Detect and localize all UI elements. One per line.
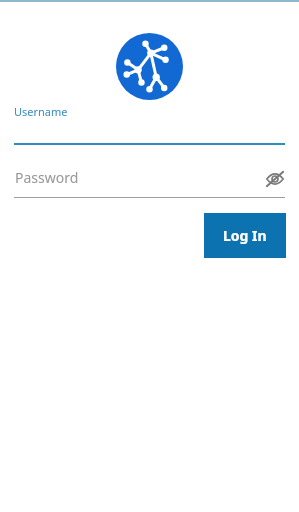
staticText: Password	[15, 168, 79, 187]
button[interactable]: Show password	[263, 167, 287, 191]
button[interactable]: Username	[0, 100, 299, 146]
staticText: Log In	[223, 226, 267, 245]
button[interactable]: Log In	[204, 213, 286, 258]
staticText: Username	[14, 104, 68, 119]
button[interactable]: Password	[0, 162, 299, 198]
